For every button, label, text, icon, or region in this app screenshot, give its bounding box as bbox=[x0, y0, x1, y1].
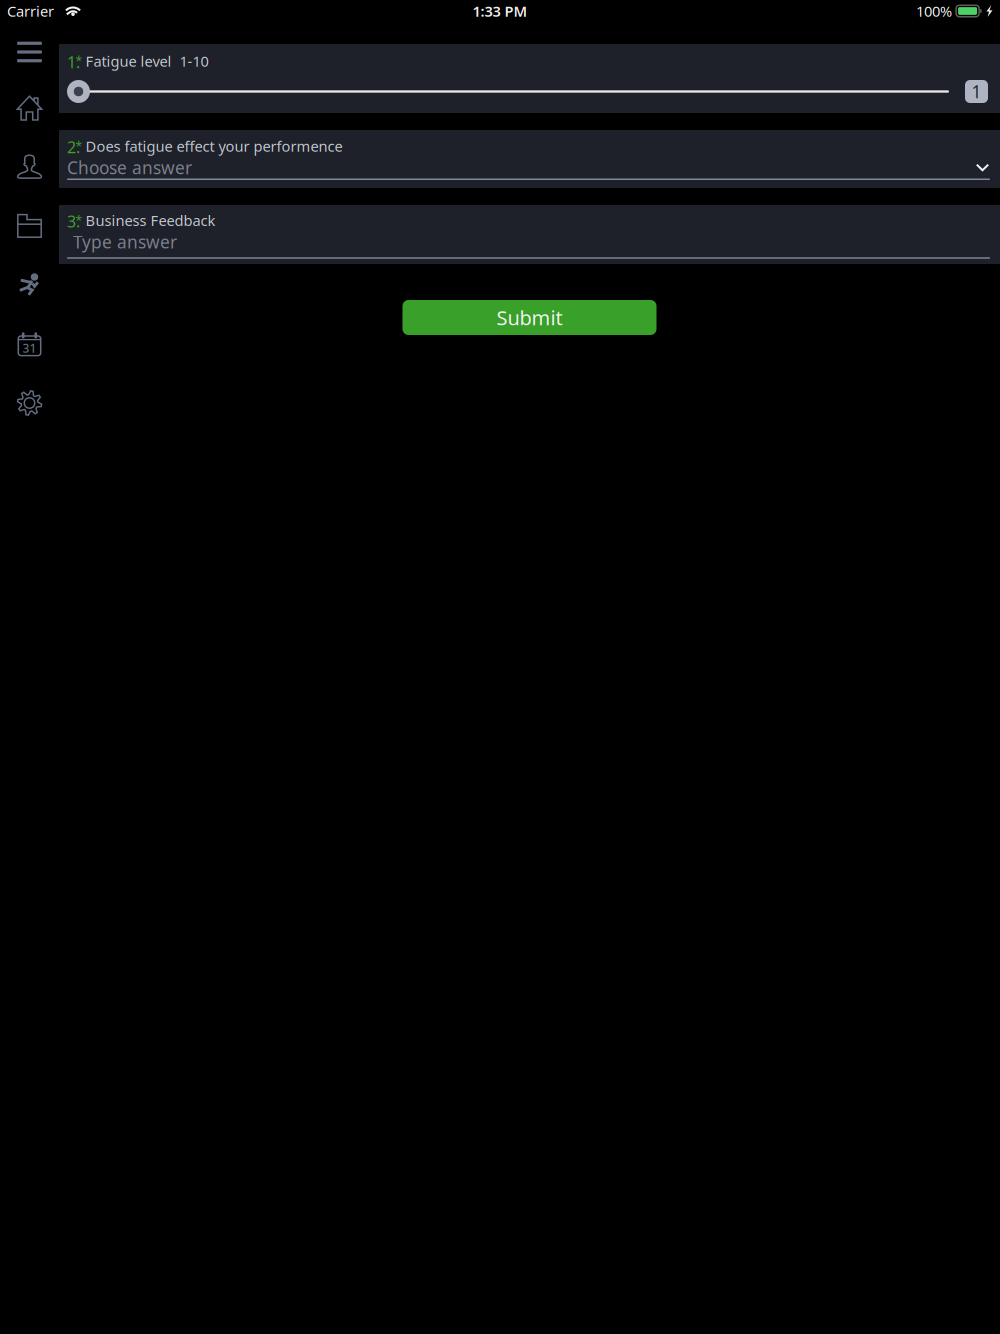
button[interactable]: Profile bbox=[0, 153, 59, 181]
button[interactable]: Submit bbox=[402, 300, 656, 335]
staticText: 2. bbox=[67, 136, 80, 158]
button[interactable]: Type answer bbox=[67, 233, 990, 259]
button[interactable]: Files bbox=[0, 212, 59, 240]
staticText: 100% bbox=[916, 1, 952, 21]
button[interactable]: Settings bbox=[0, 389, 59, 417]
staticText: * bbox=[75, 138, 82, 154]
button[interactable]: Menu bbox=[0, 38, 59, 66]
staticText: Business Feedback bbox=[85, 211, 215, 230]
staticText: * bbox=[75, 53, 82, 69]
staticText: 1:33 PM bbox=[472, 1, 527, 21]
staticText: Choose answer bbox=[67, 156, 192, 179]
staticText: Type answer bbox=[73, 230, 177, 253]
staticText: Submit bbox=[496, 304, 562, 331]
staticText: * bbox=[75, 212, 82, 228]
button[interactable]: Choose answer bbox=[67, 159, 990, 180]
staticText: 1. bbox=[67, 51, 80, 73]
staticText: Carrier bbox=[7, 1, 54, 21]
button[interactable]: Home bbox=[0, 94, 59, 122]
button[interactable]: Calendar bbox=[0, 330, 59, 358]
button[interactable]: Activity bbox=[0, 271, 59, 299]
staticText: Does fatigue effect your performence bbox=[85, 136, 342, 156]
staticText: Fatigue level 1-10 bbox=[85, 51, 208, 71]
staticText: 3. bbox=[67, 211, 80, 232]
staticText: 31 bbox=[22, 340, 36, 356]
staticText: 1 bbox=[971, 80, 981, 103]
